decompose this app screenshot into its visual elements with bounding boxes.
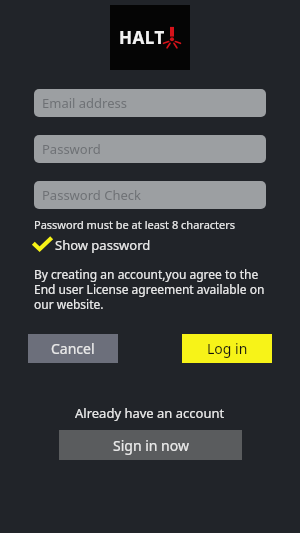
button[interactable]: Password	[34, 135, 266, 163]
staticText: By creating an account,you agree to the …	[34, 266, 266, 312]
button[interactable]: Password Check	[34, 181, 266, 209]
button[interactable]: Show password checkbox	[34, 236, 151, 254]
staticText: Sign in now	[113, 436, 189, 455]
button[interactable]: Email address	[34, 89, 266, 117]
staticText: Log in	[207, 339, 248, 358]
staticText: Cancel	[51, 339, 95, 358]
button[interactable]: Log in	[182, 334, 272, 363]
staticText: Password	[42, 140, 101, 158]
staticText: Already have an account	[75, 404, 225, 422]
staticText: Show password	[55, 236, 151, 254]
staticText: HALT	[119, 26, 165, 49]
button[interactable]: Sign in now	[59, 430, 242, 460]
staticText: Email address	[42, 94, 127, 112]
button[interactable]: Cancel	[28, 334, 118, 363]
other: Show password checkbox	[34, 238, 51, 252]
staticText: Password must be at least 8 characters	[34, 217, 236, 232]
staticText: Password Check	[42, 186, 141, 204]
